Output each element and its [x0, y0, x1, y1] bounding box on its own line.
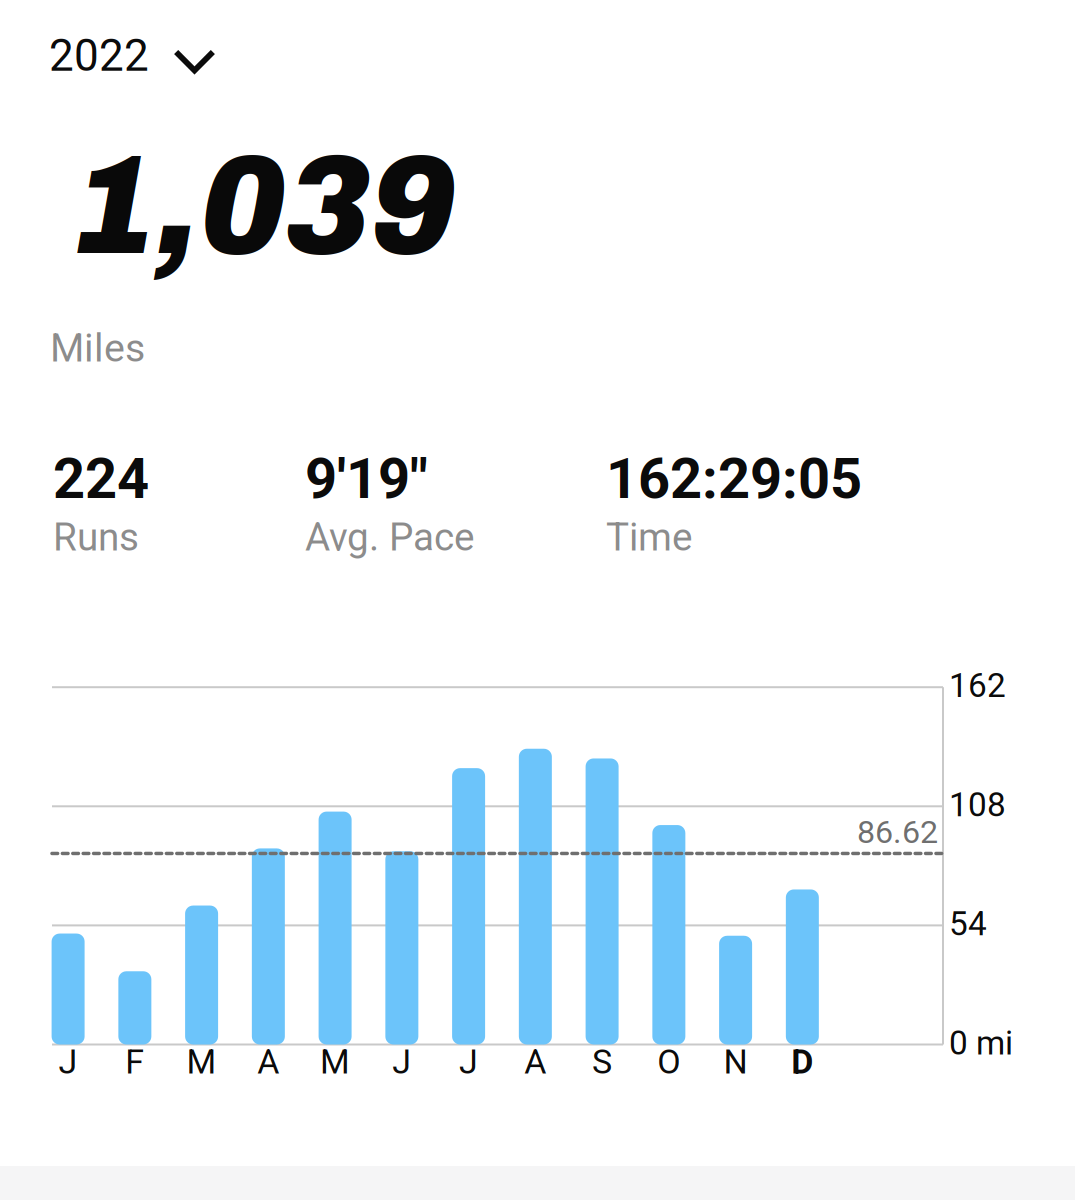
staticText: M — [320, 1042, 350, 1082]
staticText: J — [459, 1042, 478, 1082]
staticText: 54 — [949, 904, 987, 943]
staticText: D — [791, 1042, 813, 1082]
staticText: Avg. Pace — [305, 515, 475, 560]
staticText: A — [257, 1042, 279, 1082]
staticText: 86.62 — [857, 813, 938, 851]
button[interactable]: Select year, 2022 — [41, 20, 222, 92]
staticText: 162 — [949, 666, 1006, 705]
staticText: Time — [606, 515, 693, 560]
staticText: 108 — [949, 785, 1006, 824]
staticText: A — [524, 1042, 546, 1082]
staticText: 224 — [53, 446, 149, 512]
staticText: M — [187, 1042, 217, 1082]
staticText: S — [592, 1042, 612, 1082]
staticText: 1,039 — [75, 130, 455, 282]
staticText: F — [125, 1042, 144, 1082]
staticText: 9'19" — [305, 446, 428, 512]
staticText: Miles — [50, 325, 145, 371]
staticText: J — [392, 1042, 411, 1082]
staticText: J — [59, 1042, 78, 1082]
staticText: 162:29:05 — [606, 446, 862, 512]
staticText: N — [724, 1042, 748, 1082]
staticText: O — [657, 1042, 680, 1082]
staticText: Runs — [53, 515, 139, 560]
staticText: 0 mi — [949, 1023, 1013, 1063]
staticText: 2022 — [49, 30, 149, 82]
